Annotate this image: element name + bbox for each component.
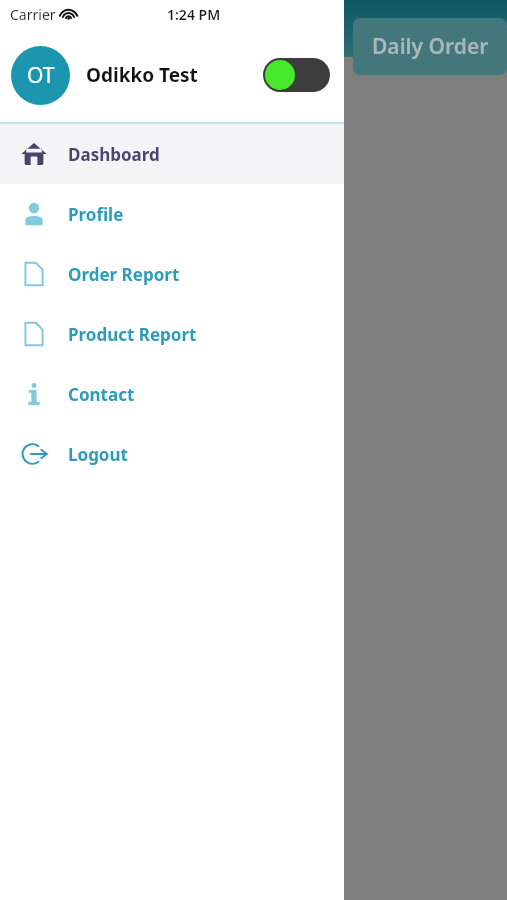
staticText: Contact: [68, 383, 135, 406]
button[interactable]: Availability toggle: [263, 58, 330, 92]
staticText: Dashboard: [68, 143, 160, 166]
staticText: Carrier: [10, 5, 56, 24]
button[interactable]: Open navigation menu: [354, 12, 388, 46]
staticText: OT: [27, 61, 55, 90]
staticText: Profile: [68, 203, 124, 226]
staticText: Order Report: [68, 263, 180, 286]
button[interactable]: Logout: [0, 424, 344, 484]
staticText: Logout: [68, 443, 128, 466]
button[interactable]: Product Report: [0, 304, 344, 364]
staticText: Daily Order: [372, 32, 489, 61]
button[interactable]: Contact: [0, 364, 344, 424]
button[interactable]: Dashboard: [0, 124, 344, 184]
staticText: Odikko Test: [86, 62, 198, 88]
button[interactable]: Profile: [0, 184, 344, 244]
button[interactable]: Daily Order: [353, 18, 507, 75]
staticText: Product Report: [68, 323, 197, 346]
staticText: 1:24 PM: [167, 5, 221, 24]
button[interactable]: OT: [11, 46, 70, 105]
button[interactable]: Order Report: [0, 244, 344, 304]
